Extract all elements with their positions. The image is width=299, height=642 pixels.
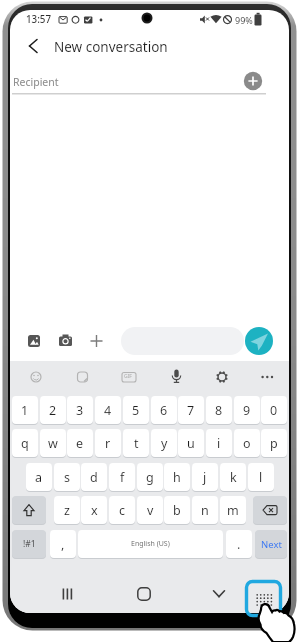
button[interactable] [72,367,92,387]
staticText: 4 [104,402,112,419]
staticText: !#1 [23,538,36,550]
staticText: 2 [49,402,57,419]
button[interactable]: v [137,496,163,524]
button[interactable] [205,580,233,608]
button[interactable]: g [137,463,163,491]
staticText: g [146,469,154,486]
staticText: o [243,435,251,452]
button[interactable]: c [109,496,135,524]
button[interactable] [253,496,287,524]
button[interactable]: r [95,429,121,457]
staticText: , [61,536,65,553]
button[interactable]: s [54,463,80,491]
staticText: New conversation [54,38,168,56]
staticText: j [203,469,207,486]
button[interactable]: 9 [234,396,260,424]
button[interactable]: i [206,429,232,457]
staticText: l [259,469,263,486]
button[interactable] [54,580,82,608]
button[interactable] [22,36,44,56]
staticText: s [64,469,70,486]
staticText: a [35,469,43,486]
button[interactable]: Next [255,530,287,558]
button[interactable]: e [67,429,93,457]
button[interactable]: m [220,496,246,524]
staticText: e [76,435,84,452]
staticText: z [64,502,70,519]
button[interactable]: t [123,429,149,457]
button[interactable]: 0 [261,396,287,424]
staticText: x [91,502,98,519]
staticText: Next [261,538,282,551]
button[interactable]: 3 [67,396,93,424]
button[interactable]: 5 [123,396,149,424]
staticText: 13:57 [26,13,52,26]
staticText: m [227,502,239,519]
staticText: t [134,435,139,452]
button[interactable] [257,367,277,387]
button[interactable] [165,367,185,387]
button[interactable]: b [164,496,190,524]
button[interactable]: a [26,463,52,491]
button[interactable]: 4 [95,396,121,424]
button[interactable] [245,327,273,355]
button[interactable]: English (US) [78,530,223,558]
staticText: k [230,469,237,486]
button[interactable] [86,331,106,351]
staticText: . [237,536,241,553]
button[interactable]: n [192,496,218,524]
button[interactable]: 7 [178,396,204,424]
button[interactable]: 1 [12,396,38,424]
staticText: d [90,469,98,486]
button[interactable]: !#1 [12,530,46,558]
button[interactable]: 8 [206,396,232,424]
staticText: 0 [270,402,278,419]
button[interactable]: 6 [151,396,177,424]
button[interactable] [55,331,75,351]
button[interactable] [119,367,139,387]
staticText: 3 [76,402,84,419]
button[interactable] [12,496,46,524]
staticText: f [120,469,125,486]
button[interactable]: x [81,496,107,524]
staticText: h [173,469,181,486]
button[interactable]: f [109,463,135,491]
staticText: i [217,435,221,452]
staticText: w [48,435,58,452]
button[interactable] [24,331,44,351]
button[interactable]: , [50,530,76,558]
button[interactable]: q [12,429,38,457]
button[interactable] [26,367,46,387]
button[interactable]: w [40,429,66,457]
button[interactable] [130,580,158,608]
staticText: English (US) [131,539,170,549]
button[interactable]: u [178,429,204,457]
staticText: 8 [215,402,223,419]
staticText: Recipient [13,75,59,89]
button[interactable] [211,367,231,387]
staticText: v [147,502,154,519]
button[interactable]: p [261,429,287,457]
button[interactable]: y [151,429,177,457]
staticText: y [161,435,168,452]
button[interactable]: 2 [40,396,66,424]
staticText: c [119,502,126,519]
button[interactable]: d [81,463,107,491]
staticText: 99% [235,14,253,26]
button[interactable]: h [164,463,190,491]
button[interactable] [248,583,279,613]
button[interactable]: o [234,429,260,457]
button[interactable] [242,70,264,92]
staticText: GIF [124,373,132,380]
staticText: p [270,435,278,452]
staticText: n [201,502,209,519]
button[interactable]: z [54,496,80,524]
button[interactable]: k [220,463,246,491]
staticText: q [21,435,29,452]
staticText: r [105,435,111,452]
staticText: u [187,435,195,452]
button[interactable]: . [226,530,252,558]
button[interactable]: l [248,463,274,491]
button[interactable]: j [192,463,218,491]
